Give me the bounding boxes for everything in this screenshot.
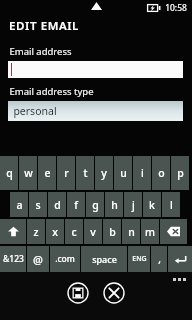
button[interactable]: u — [114, 156, 132, 190]
button[interactable]: &123 — [0, 246, 26, 272]
staticText: h — [111, 198, 118, 212]
staticText: j — [132, 198, 135, 212]
button[interactable]: Shift — [0, 219, 26, 244]
button[interactable] — [8, 61, 183, 78]
staticText: EDIT EMAIL — [9, 18, 79, 34]
button[interactable]: f — [67, 192, 85, 217]
button[interactable]: q — [0, 156, 18, 190]
staticText: &123 — [3, 253, 24, 265]
button[interactable]: personal — [8, 101, 183, 121]
button[interactable]: r — [57, 156, 75, 190]
staticText: x — [52, 225, 58, 239]
button[interactable]: t — [76, 156, 94, 190]
button[interactable]: d — [48, 192, 66, 217]
button[interactable]: @ — [27, 246, 49, 272]
staticText: f — [74, 198, 78, 212]
staticText: w — [24, 166, 33, 180]
staticText: y — [101, 166, 107, 180]
button[interactable]: w — [19, 156, 37, 190]
staticText: o — [158, 166, 165, 180]
button[interactable]: k — [143, 192, 161, 217]
staticText: k — [149, 198, 155, 212]
button[interactable]: e — [38, 156, 56, 190]
staticText: t — [83, 166, 88, 180]
staticText: , — [158, 252, 161, 266]
staticText: i — [141, 166, 144, 180]
staticText: Email address — [9, 45, 72, 58]
staticText: space — [92, 253, 117, 265]
button[interactable]: space — [81, 246, 127, 272]
button[interactable]: Save — [67, 282, 89, 304]
staticText: @ — [33, 252, 43, 267]
staticText: v — [90, 225, 96, 239]
staticText: z — [33, 225, 39, 239]
staticText: b — [109, 225, 116, 239]
staticText: .com — [55, 253, 75, 265]
staticText: Email address type — [9, 85, 94, 98]
button[interactable]: h — [105, 192, 123, 217]
staticText: d — [54, 198, 61, 212]
button[interactable]: j — [124, 192, 142, 217]
button[interactable]: l — [162, 192, 180, 217]
staticText: 10:58 — [165, 2, 187, 14]
button[interactable]: a — [10, 192, 28, 217]
staticText: u — [120, 166, 127, 180]
button[interactable]: b — [103, 219, 121, 244]
button[interactable]: Enter — [168, 246, 192, 272]
button[interactable]: c — [65, 219, 83, 244]
button[interactable]: Cancel — [103, 282, 125, 304]
button[interactable]: z — [27, 219, 45, 244]
staticText: m — [145, 225, 155, 239]
button[interactable]: More options — [173, 278, 186, 281]
button[interactable]: n — [122, 219, 140, 244]
staticText: r — [64, 166, 69, 180]
staticText: personal — [13, 104, 57, 118]
button[interactable]: s — [29, 192, 47, 217]
button[interactable]: .com — [50, 246, 80, 272]
staticText: p — [177, 166, 184, 180]
button[interactable]: Backspace — [160, 219, 187, 244]
staticText: a — [16, 198, 23, 212]
button[interactable]: , — [151, 246, 167, 272]
button[interactable]: o — [152, 156, 170, 190]
staticText: s — [35, 198, 41, 212]
staticText: e — [44, 166, 51, 180]
staticText: g — [92, 198, 99, 212]
button[interactable]: y — [95, 156, 113, 190]
staticText: ENG — [132, 254, 147, 264]
button[interactable]: x — [46, 219, 64, 244]
button[interactable]: g — [86, 192, 104, 217]
button[interactable]: i — [133, 156, 151, 190]
staticText: c — [71, 225, 77, 239]
staticText: n — [128, 225, 135, 239]
button[interactable]: ENG — [128, 246, 150, 272]
button[interactable]: m — [141, 219, 159, 244]
button[interactable]: p — [171, 156, 189, 190]
button[interactable]: v — [84, 219, 102, 244]
staticText: q — [6, 166, 13, 180]
staticText: l — [170, 198, 173, 212]
